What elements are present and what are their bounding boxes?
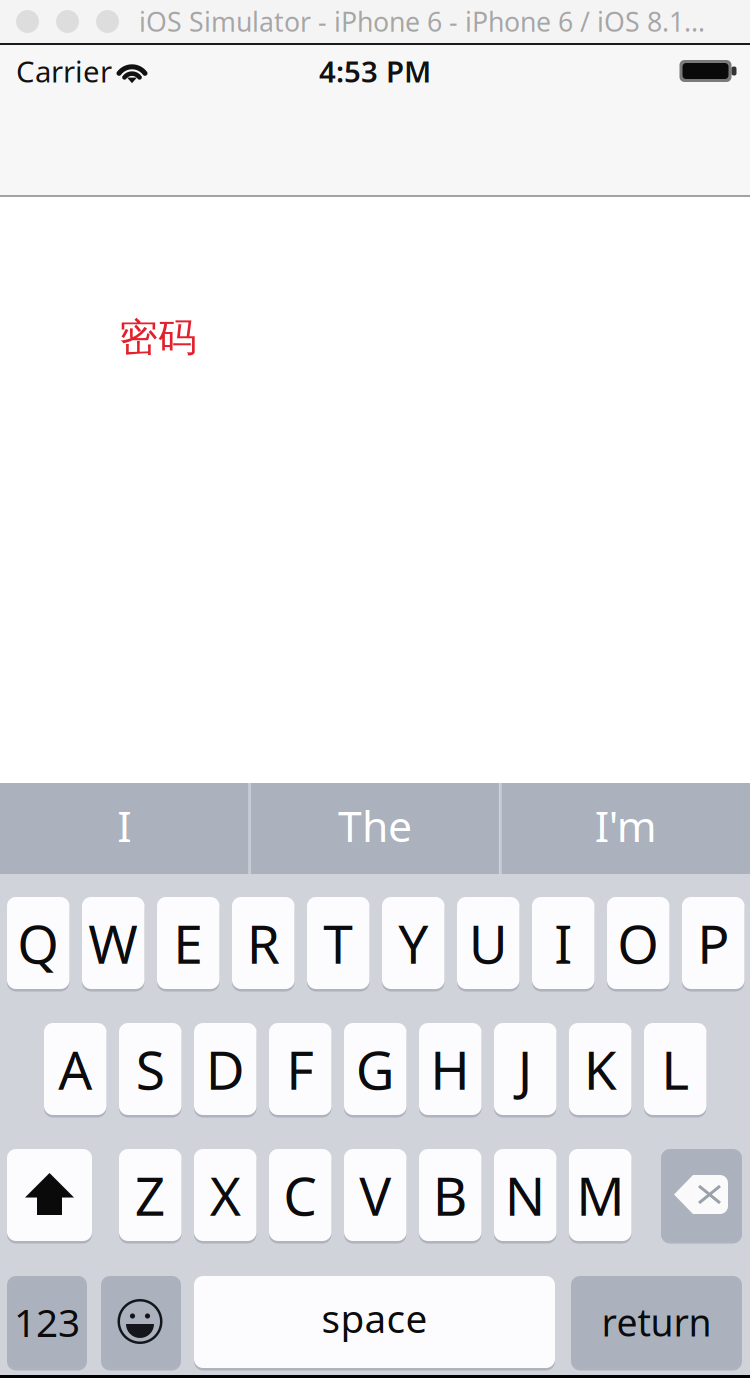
staticText: I [117,797,131,854]
staticText: S [136,1034,165,1104]
staticText: O [617,908,659,978]
button[interactable]: D [194,1023,256,1115]
button[interactable]: Window control [56,10,79,33]
staticText: J [518,1034,533,1104]
button[interactable]: K [569,1023,631,1115]
button[interactable]: Window control [16,10,39,33]
staticText: A [58,1034,92,1104]
button[interactable]: Delete [661,1149,742,1241]
button[interactable]: O [607,897,669,989]
button[interactable]: Z [119,1149,181,1241]
button[interactable]: V [344,1149,406,1241]
staticText: K [584,1034,617,1104]
button[interactable]: I [532,897,594,989]
staticText: R [247,908,280,978]
staticText: I'm [595,797,657,854]
button[interactable]: Emoji [101,1276,181,1368]
staticText: N [505,1160,546,1230]
button[interactable]: return [571,1276,742,1368]
staticText: C [283,1160,317,1230]
button[interactable]: F [269,1023,331,1115]
staticText: 密码 [119,314,197,361]
button[interactable]: The [251,783,499,874]
button[interactable]: Shift [7,1149,92,1241]
button[interactable]: G [344,1023,406,1115]
staticText: D [206,1034,245,1104]
button[interactable]: L [644,1023,706,1115]
button[interactable]: E [157,897,219,989]
button[interactable]: X [194,1149,256,1241]
staticText: P [697,908,729,978]
button[interactable]: U [457,897,519,989]
staticText: L [661,1034,689,1104]
staticText: W [88,908,138,978]
button[interactable]: A [44,1023,106,1115]
button[interactable]: H [419,1023,481,1115]
staticText: Q [17,908,59,978]
button[interactable]: W [82,897,144,989]
staticText: space [321,1292,427,1344]
staticText: F [286,1034,314,1104]
button[interactable]: P [682,897,744,989]
staticText: V [359,1160,391,1230]
button[interactable]: B [419,1149,481,1241]
button[interactable]: I'm [501,783,750,874]
staticText: H [430,1034,470,1104]
staticText: T [323,908,353,978]
staticText: I [554,908,572,978]
button[interactable]: space [194,1276,555,1368]
button[interactable]: I [0,783,249,874]
staticText: G [356,1034,395,1104]
staticText: X [210,1160,241,1230]
button[interactable]: 123 [7,1276,87,1368]
staticText: return [601,1297,711,1347]
staticText: M [576,1160,624,1230]
staticText: iOS Simulator - iPhone 6 - iPhone 6 / iO… [139,4,705,39]
staticText: Z [135,1160,166,1230]
button[interactable]: T [307,897,369,989]
button[interactable]: N [494,1149,556,1241]
staticText: Carrier [16,51,112,90]
button[interactable]: S [119,1023,181,1115]
button[interactable]: C [269,1149,331,1241]
staticText: B [433,1160,468,1230]
staticText: U [469,908,508,978]
staticText: The [338,797,412,854]
button[interactable]: Window control [96,10,119,33]
staticText: 123 [14,1296,80,1348]
staticText: E [173,908,203,978]
button[interactable]: Y [382,897,444,989]
staticText: Y [398,908,428,978]
button[interactable]: J [494,1023,556,1115]
staticText: 4:53 PM [319,51,431,90]
button[interactable]: M [569,1149,631,1241]
button[interactable]: R [232,897,294,989]
button[interactable]: Q [7,897,69,989]
